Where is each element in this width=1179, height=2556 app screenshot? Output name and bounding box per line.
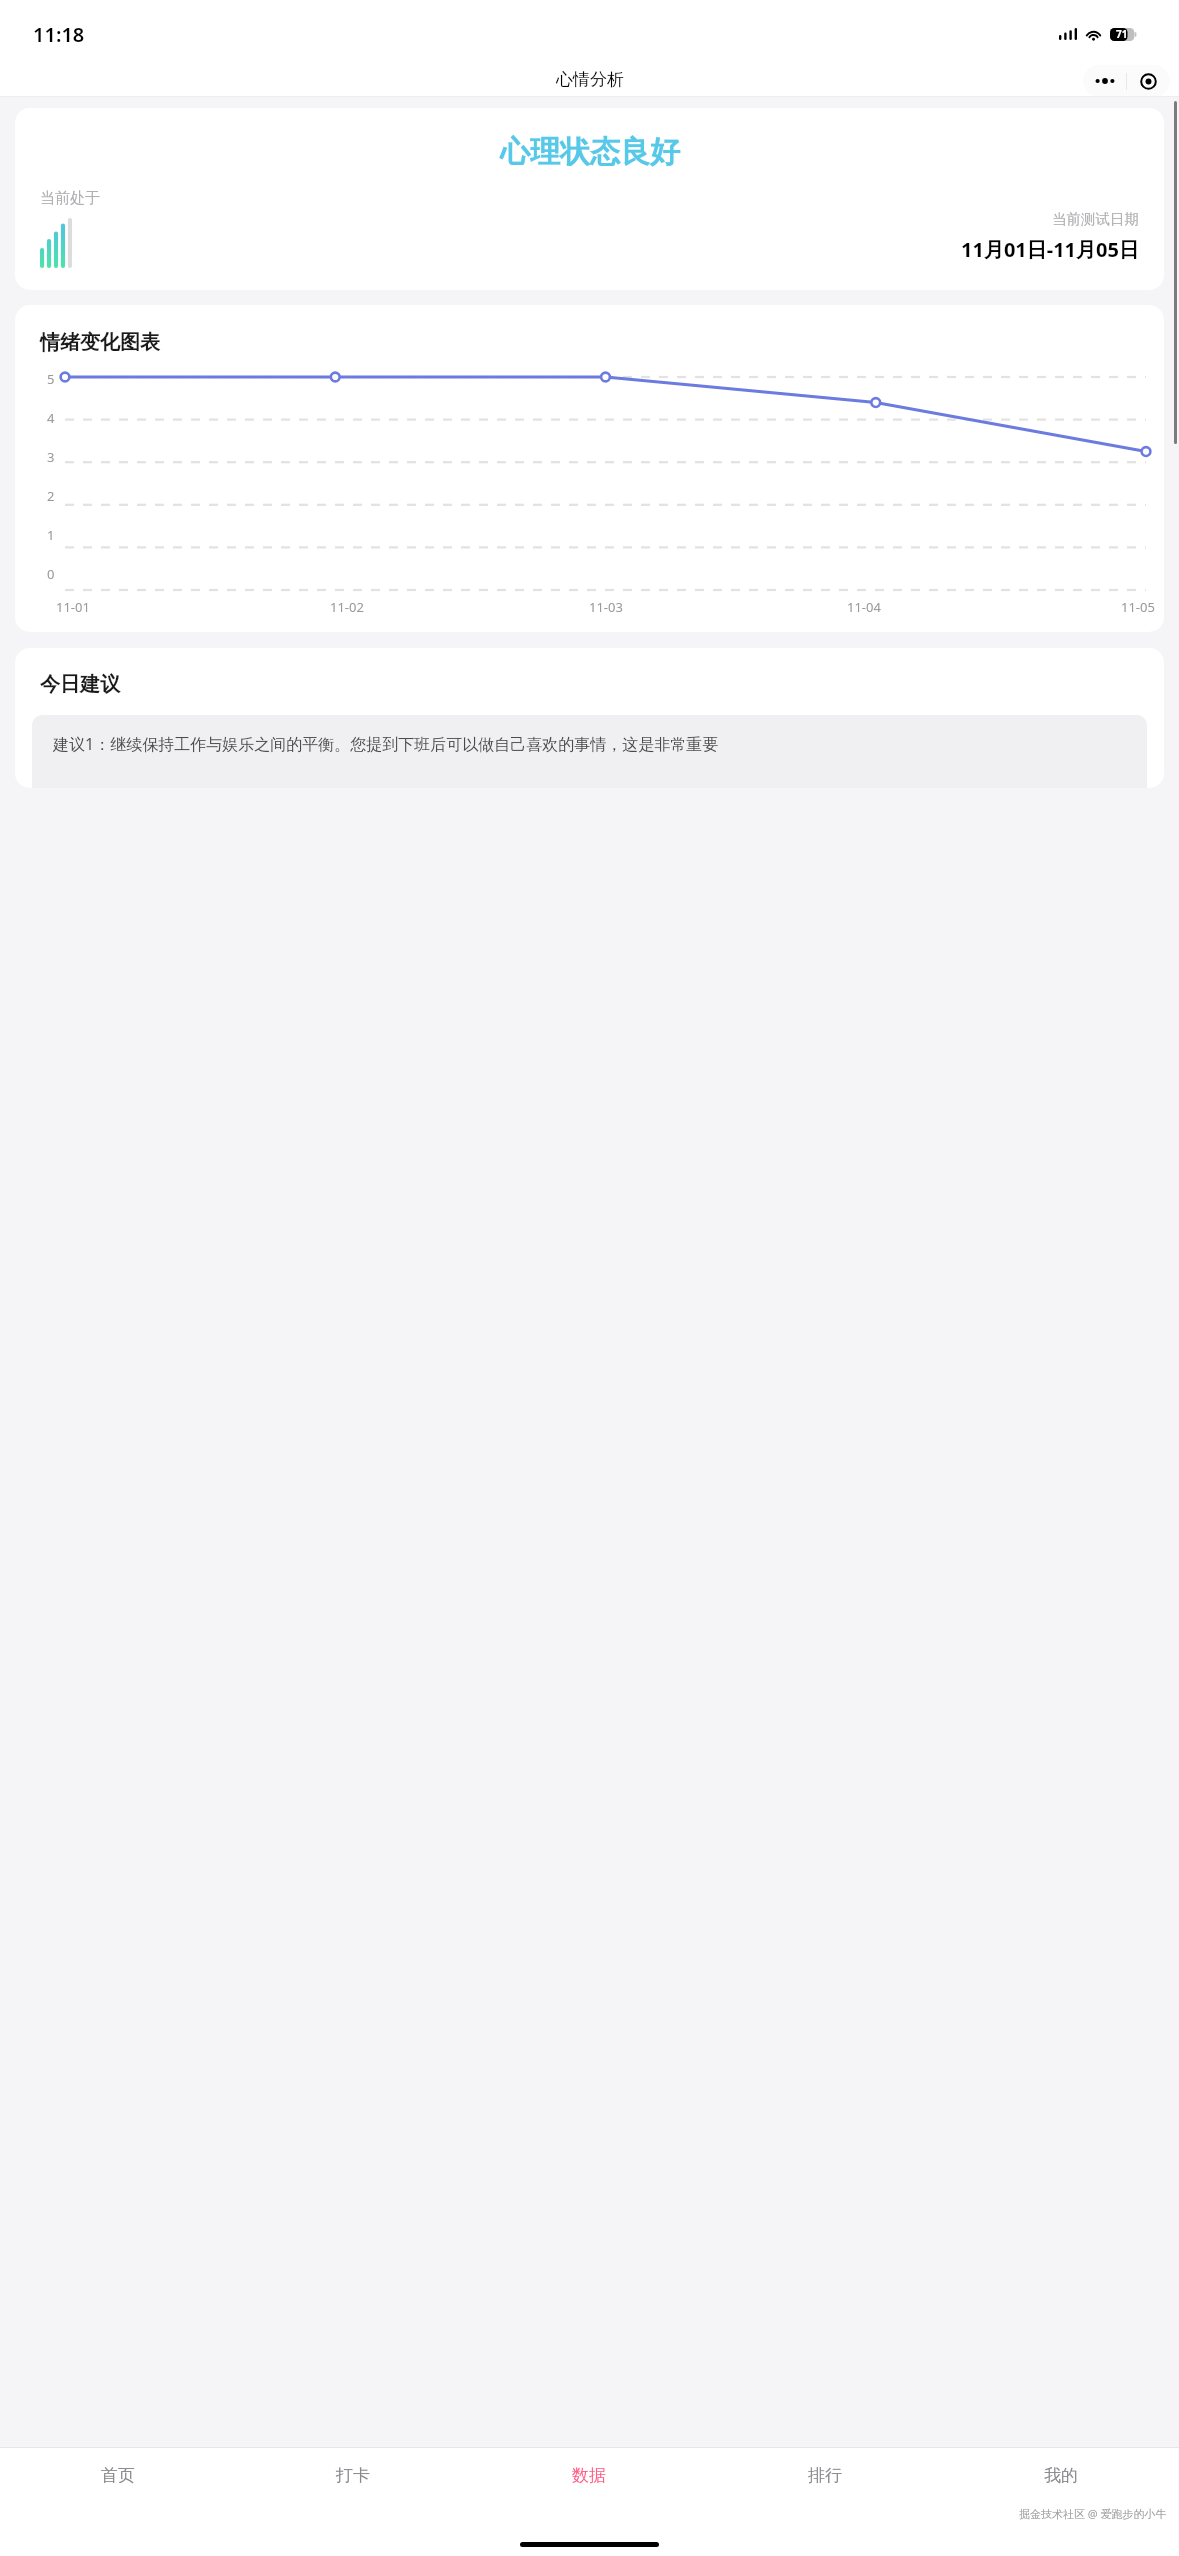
staticText: 心理状态良好: [500, 133, 680, 171]
button[interactable]: 打卡: [235, 2447, 471, 2503]
button[interactable]: Close: [1127, 65, 1170, 97]
staticText: 我的: [1044, 2465, 1078, 2486]
staticText: 11-02: [330, 598, 364, 616]
staticText: 11:18: [33, 21, 85, 48]
staticText: 数据: [572, 2465, 606, 2486]
staticText: 情绪变化图表: [40, 330, 160, 355]
staticText: 11月01日-11月05日: [961, 236, 1139, 263]
staticText: 建议1：继续保持工作与娱乐之间的平衡。您提到下班后可以做自己喜欢的事情，这是非常…: [53, 733, 719, 755]
staticText: 11-05: [1121, 598, 1155, 616]
button[interactable]: 情绪变化图表: [15, 305, 1164, 632]
staticText: 11-01: [56, 598, 90, 616]
staticText: 11-04: [847, 598, 881, 616]
staticText: 首页: [101, 2465, 135, 2486]
staticText: 2: [47, 487, 55, 505]
staticText: 当前处于: [40, 189, 100, 208]
button[interactable]: 心理状态良好: [15, 108, 1164, 290]
button[interactable]: 数据: [471, 2447, 707, 2503]
staticText: 5: [47, 370, 55, 388]
button[interactable]: 首页: [0, 2447, 235, 2503]
staticText: 打卡: [336, 2465, 370, 2486]
button[interactable]: 我的: [943, 2447, 1179, 2503]
staticText: 掘金技术社区 @ 爱跑步的小牛: [1019, 2506, 1167, 2521]
staticText: 4: [47, 409, 55, 427]
staticText: 当前测试日期: [1052, 210, 1139, 228]
staticText: 11-03: [589, 598, 623, 616]
staticText: 1: [47, 526, 55, 544]
staticText: 71: [1116, 27, 1128, 41]
staticText: 排行: [808, 2465, 842, 2486]
button[interactable]: 今日建议: [15, 648, 1164, 788]
button[interactable]: More: [1083, 65, 1126, 97]
staticText: 3: [47, 448, 55, 466]
staticText: 今日建议: [40, 672, 120, 697]
button[interactable]: 排行: [707, 2447, 943, 2503]
staticText: 0: [47, 565, 55, 583]
staticText: 心情分析: [556, 69, 624, 90]
